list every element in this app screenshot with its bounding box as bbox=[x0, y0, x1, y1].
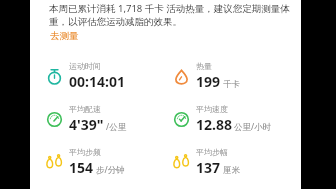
button[interactable]: 平均速度 bbox=[165, 104, 301, 134]
staticText: 本周已累计消耗 1,718 千卡 活动热量，建议您定期测量体重，以评估您运动减脂… bbox=[49, 2, 295, 28]
staticText: 平均配速 bbox=[69, 104, 101, 114]
button[interactable]: 运动时间 bbox=[30, 61, 165, 91]
staticText: 00:14:01 bbox=[69, 72, 125, 91]
other: 运动时间 bbox=[46, 68, 63, 85]
staticText: 137 bbox=[196, 158, 221, 177]
button[interactable]: 去测量 bbox=[49, 29, 80, 43]
staticText: /公里 bbox=[106, 121, 127, 133]
other: 平均速度 bbox=[173, 111, 190, 128]
button[interactable]: 平均步频 bbox=[30, 147, 165, 177]
other: 热量 bbox=[173, 68, 190, 85]
staticText: 运动时间 bbox=[69, 61, 101, 71]
staticText: 4'39" bbox=[69, 115, 104, 134]
staticText: 热量 bbox=[196, 61, 212, 71]
button[interactable]: 平均步幅 bbox=[165, 147, 301, 177]
other: 平均配速 bbox=[46, 111, 63, 128]
other: 平均步幅 bbox=[173, 154, 190, 171]
staticText: 公里/小时 bbox=[234, 121, 272, 133]
staticText: 去测量 bbox=[50, 30, 79, 42]
button[interactable]: 平均配速 bbox=[30, 104, 165, 134]
staticText: 平均速度 bbox=[196, 104, 228, 114]
staticText: 12.88 bbox=[196, 115, 232, 134]
other: 平均步频 bbox=[46, 154, 63, 171]
button[interactable]: 热量 bbox=[165, 61, 301, 91]
staticText: 千卡 bbox=[223, 79, 240, 90]
staticText: 154 bbox=[69, 158, 94, 177]
staticText: 199 bbox=[196, 72, 221, 91]
staticText: 平均步频 bbox=[69, 147, 101, 157]
staticText: 平均步幅 bbox=[196, 147, 228, 157]
staticText: 厘米 bbox=[223, 165, 240, 176]
staticText: 步/分钟 bbox=[96, 164, 125, 176]
